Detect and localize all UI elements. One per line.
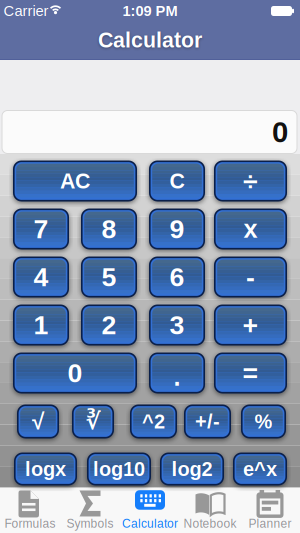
button[interactable]: Formulas bbox=[1, 489, 59, 531]
button[interactable]: 5 bbox=[81, 256, 137, 297]
staticText: . bbox=[173, 363, 180, 391]
button[interactable]: 7 bbox=[13, 208, 69, 249]
staticText: 2 bbox=[101, 310, 116, 339]
button[interactable]: Notebook bbox=[181, 489, 239, 531]
button[interactable]: ∛ bbox=[72, 404, 114, 438]
staticText: Symbols bbox=[66, 517, 113, 530]
button[interactable]: % bbox=[241, 404, 286, 438]
staticText: AC bbox=[60, 169, 90, 193]
button[interactable]: e^x bbox=[233, 452, 287, 485]
button[interactable]: ÷ bbox=[214, 160, 287, 201]
staticText: % bbox=[254, 411, 272, 432]
staticText: Formulas bbox=[4, 517, 55, 530]
button[interactable]: C bbox=[149, 160, 205, 201]
button[interactable]: + bbox=[214, 304, 287, 345]
button[interactable]: = bbox=[214, 352, 287, 393]
button[interactable]: 3 bbox=[149, 304, 205, 345]
staticText: Notebook bbox=[183, 517, 236, 530]
staticText: 6 bbox=[169, 262, 184, 291]
button[interactable]: Planner bbox=[241, 489, 299, 531]
staticText: 0 bbox=[67, 358, 82, 387]
button[interactable]: Calculator bbox=[121, 489, 179, 531]
button[interactable]: AC bbox=[13, 160, 137, 201]
staticText: ÷ bbox=[243, 166, 258, 195]
staticText: √ bbox=[32, 409, 44, 434]
button[interactable]: 0 bbox=[13, 352, 137, 393]
staticText: 1 bbox=[33, 310, 48, 339]
button[interactable]: logx bbox=[14, 452, 77, 485]
staticText: 8 bbox=[101, 214, 116, 243]
staticText: + bbox=[242, 310, 258, 339]
staticText: log2 bbox=[171, 458, 212, 480]
staticText: 4 bbox=[33, 262, 48, 291]
staticText: 0 bbox=[272, 116, 288, 148]
staticText: Calculator bbox=[98, 28, 202, 52]
staticText: 5 bbox=[101, 262, 116, 291]
staticText: ∛ bbox=[85, 409, 100, 434]
button[interactable]: 1 bbox=[13, 304, 69, 345]
staticText: +/- bbox=[195, 411, 220, 432]
button[interactable]: √ bbox=[17, 404, 59, 438]
staticText: 3 bbox=[169, 310, 184, 339]
staticText: 7 bbox=[33, 214, 48, 243]
button[interactable]: 2 bbox=[81, 304, 137, 345]
staticText: Planner bbox=[248, 517, 291, 530]
button[interactable]: 6 bbox=[149, 256, 205, 297]
staticText: x bbox=[243, 215, 257, 243]
button[interactable]: +/- bbox=[184, 404, 231, 438]
staticText: 9 bbox=[169, 214, 184, 243]
button[interactable]: x bbox=[214, 208, 287, 249]
button[interactable]: log2 bbox=[160, 452, 224, 485]
staticText: = bbox=[242, 358, 258, 387]
staticText: Calculator bbox=[122, 517, 178, 530]
button[interactable]: 9 bbox=[149, 208, 205, 249]
button[interactable]: 4 bbox=[13, 256, 69, 297]
staticText: 1:09 PM bbox=[122, 3, 177, 19]
button[interactable]: ^2 bbox=[130, 404, 177, 438]
button[interactable]: Symbols bbox=[61, 489, 119, 531]
staticText: log10 bbox=[93, 458, 145, 480]
staticText: e^x bbox=[243, 458, 277, 480]
button[interactable]: - bbox=[214, 256, 287, 297]
staticText: ^2 bbox=[142, 411, 165, 432]
staticText: logx bbox=[25, 458, 66, 480]
button[interactable]: log10 bbox=[87, 452, 151, 485]
staticText: - bbox=[246, 262, 255, 291]
button[interactable]: . bbox=[149, 352, 205, 393]
staticText: Carrier bbox=[3, 3, 48, 19]
button[interactable]: 8 bbox=[81, 208, 137, 249]
staticText: C bbox=[169, 169, 184, 193]
